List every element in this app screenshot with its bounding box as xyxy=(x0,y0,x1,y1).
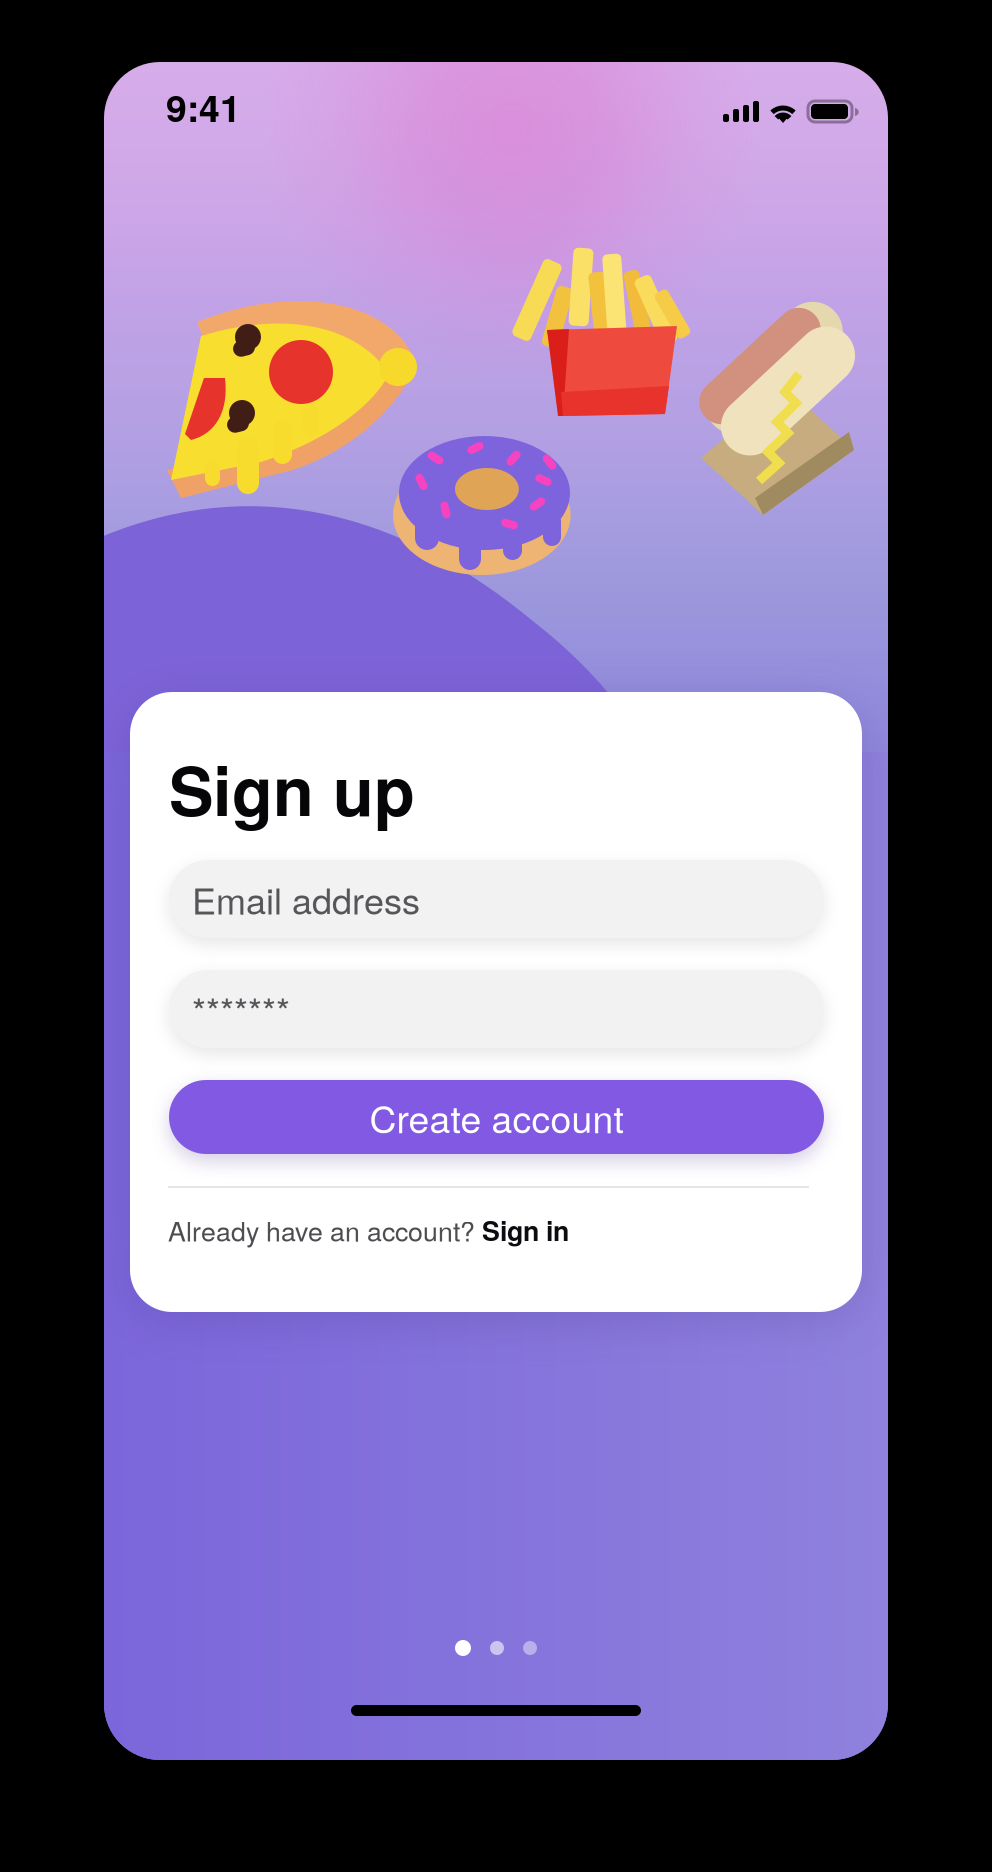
button[interactable]: Create account xyxy=(169,1080,824,1154)
staticText: Sign up xyxy=(169,741,415,836)
staticText: Create account xyxy=(369,1090,623,1144)
staticText: ******* xyxy=(192,983,290,1035)
staticText: Sign in xyxy=(482,1211,569,1249)
staticText: 9:41 xyxy=(166,80,241,133)
button[interactable]: Already have an account? xyxy=(168,1204,816,1256)
staticText: Already have an account? xyxy=(168,1211,482,1249)
staticText: Email address xyxy=(192,873,420,925)
